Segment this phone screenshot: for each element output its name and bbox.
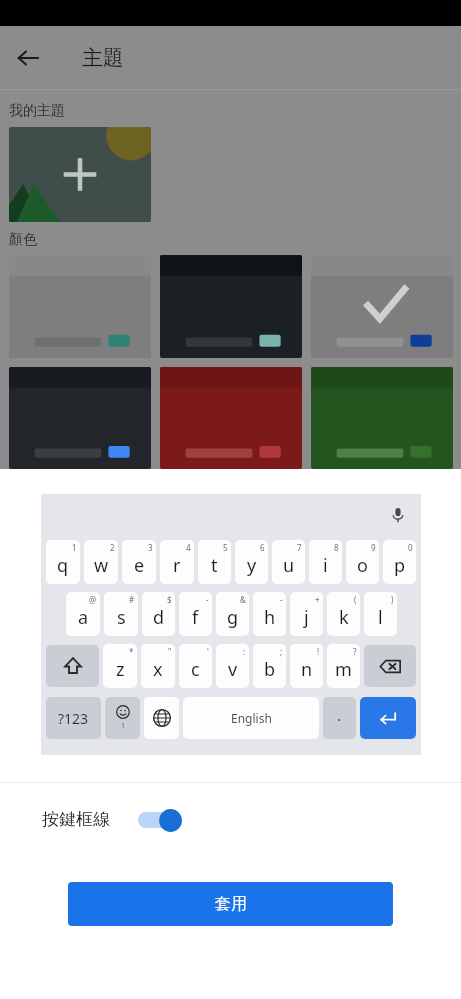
button[interactable]: Shift bbox=[46, 645, 99, 687]
staticText: 7 bbox=[297, 542, 302, 553]
staticText: t bbox=[211, 553, 218, 578]
button[interactable]: - bbox=[253, 592, 286, 636]
staticText: s bbox=[117, 605, 126, 630]
button[interactable]: ) bbox=[364, 592, 397, 636]
button[interactable]: Backspace bbox=[364, 645, 416, 687]
button[interactable]: ? bbox=[327, 644, 360, 688]
staticText: o bbox=[357, 553, 368, 578]
staticText: - bbox=[280, 594, 283, 605]
staticText: 主題 bbox=[82, 45, 124, 71]
button[interactable]: Theme colour bbox=[9, 255, 151, 358]
staticText: 按鍵框線 bbox=[42, 809, 110, 830]
button[interactable]: 1 bbox=[46, 540, 80, 584]
staticText: ? bbox=[353, 646, 357, 657]
button[interactable]: . bbox=[323, 697, 356, 739]
button[interactable]: 4 bbox=[160, 540, 194, 584]
button[interactable]: + bbox=[290, 592, 323, 636]
button[interactable]: ?123 bbox=[46, 697, 101, 739]
staticText: @ bbox=[89, 594, 97, 605]
staticText: 6 bbox=[260, 542, 265, 553]
staticText: 4 bbox=[186, 542, 191, 553]
staticText: i bbox=[323, 553, 328, 578]
staticText: x bbox=[153, 657, 163, 682]
staticText: " bbox=[168, 646, 172, 657]
staticText: p bbox=[394, 553, 406, 578]
staticText: n bbox=[301, 657, 313, 682]
button[interactable]: 0 bbox=[383, 540, 416, 584]
staticText: 顏色 bbox=[9, 231, 37, 249]
button[interactable]: English bbox=[183, 697, 319, 739]
staticText: ' bbox=[207, 646, 209, 657]
button[interactable]: - bbox=[179, 592, 212, 636]
button[interactable]: ( bbox=[327, 592, 360, 636]
staticText: j bbox=[304, 605, 309, 630]
button[interactable]: Back bbox=[0, 30, 56, 86]
button[interactable]: Emoji bbox=[105, 697, 140, 739]
staticText: ) bbox=[391, 594, 394, 605]
staticText: c bbox=[191, 657, 200, 682]
staticText: * bbox=[129, 646, 134, 657]
button[interactable]: 7 bbox=[272, 540, 305, 584]
staticText: ! bbox=[317, 646, 320, 657]
staticText: # bbox=[129, 594, 135, 605]
staticText: . bbox=[337, 705, 342, 725]
button[interactable]: : bbox=[216, 644, 249, 688]
button[interactable]: & bbox=[216, 592, 249, 636]
staticText: 3 bbox=[148, 542, 153, 553]
button[interactable]: # bbox=[104, 592, 138, 636]
staticText: e bbox=[134, 553, 145, 578]
button[interactable]: @ bbox=[66, 592, 100, 636]
staticText: 我的主題 bbox=[9, 102, 65, 120]
button[interactable]: Theme colour bbox=[160, 367, 302, 469]
staticText: w bbox=[94, 553, 109, 578]
staticText: 套用 bbox=[215, 894, 247, 914]
staticText: h bbox=[264, 605, 276, 630]
staticText: English bbox=[231, 710, 272, 726]
staticText: 8 bbox=[334, 542, 339, 553]
button[interactable]: Theme colour bbox=[311, 255, 453, 358]
staticText: u bbox=[283, 553, 295, 578]
staticText: y bbox=[247, 553, 257, 578]
button[interactable]: " bbox=[141, 644, 175, 688]
button[interactable]: Key borders toggle bbox=[138, 807, 182, 833]
button[interactable]: 3 bbox=[122, 540, 156, 584]
staticText: $ bbox=[167, 594, 172, 605]
button[interactable]: Theme colour bbox=[160, 255, 302, 358]
button[interactable]: * bbox=[103, 644, 137, 688]
staticText: v bbox=[228, 657, 238, 682]
staticText: m bbox=[335, 657, 352, 682]
staticText: 9 bbox=[371, 542, 376, 553]
button[interactable]: ! bbox=[290, 644, 323, 688]
button[interactable]: Enter bbox=[360, 697, 416, 739]
staticText: f bbox=[192, 605, 199, 630]
staticText: g bbox=[227, 605, 239, 630]
staticText: & bbox=[240, 594, 246, 605]
button[interactable]: Change language bbox=[144, 697, 179, 739]
button[interactable]: ; bbox=[253, 644, 286, 688]
staticText: d bbox=[153, 605, 165, 630]
staticText: : bbox=[243, 646, 246, 657]
staticText: 1 bbox=[121, 721, 126, 731]
staticText: l bbox=[378, 605, 383, 630]
staticText: + bbox=[315, 594, 320, 605]
staticText: 5 bbox=[223, 542, 228, 553]
button[interactable]: 9 bbox=[346, 540, 379, 584]
button[interactable]: 6 bbox=[235, 540, 268, 584]
staticText: b bbox=[264, 657, 276, 682]
button[interactable]: $ bbox=[142, 592, 175, 636]
button[interactable]: Voice input bbox=[385, 502, 411, 528]
button[interactable]: 套用 bbox=[68, 882, 393, 926]
staticText: ( bbox=[354, 594, 357, 605]
button[interactable]: Theme colour bbox=[9, 367, 151, 469]
button[interactable]: 8 bbox=[309, 540, 342, 584]
staticText: a bbox=[78, 605, 89, 630]
staticText: - bbox=[206, 594, 209, 605]
button[interactable]: 5 bbox=[198, 540, 231, 584]
staticText: 2 bbox=[110, 542, 115, 553]
button[interactable]: ' bbox=[179, 644, 212, 688]
button[interactable]: 按鍵框線 bbox=[0, 783, 461, 856]
button[interactable]: 2 bbox=[84, 540, 118, 584]
button[interactable]: Theme colour bbox=[311, 367, 453, 469]
staticText: r bbox=[173, 553, 181, 578]
button[interactable]: Add theme bbox=[9, 127, 151, 222]
